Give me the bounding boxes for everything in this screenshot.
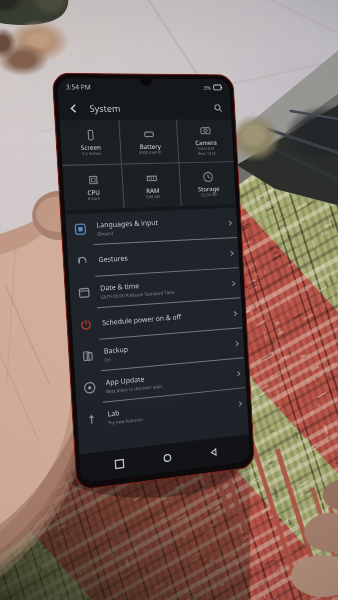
button[interactable]: Search [211, 101, 224, 114]
staticText: Gboard [97, 230, 113, 237]
staticText: Lab [107, 408, 120, 420]
button[interactable]: Date & time [69, 268, 241, 309]
button[interactable]: Recent apps [109, 453, 130, 475]
button[interactable]: Schedule power on & off [71, 298, 243, 341]
staticText: 3.00 GB [145, 194, 160, 199]
button[interactable]: Battery [119, 120, 178, 164]
staticText: App Update [105, 374, 146, 388]
staticText: 32.00 GB [201, 192, 217, 197]
staticText: Try new features [108, 416, 144, 426]
button[interactable] [66, 101, 81, 115]
button[interactable]: App Update [75, 358, 246, 404]
staticText: 3% [203, 84, 211, 91]
staticText: Front 5 M Rear 13 M [197, 146, 216, 156]
staticText: Storage [198, 184, 220, 192]
staticText: Date & time [100, 281, 140, 294]
staticText: Battery [139, 142, 161, 150]
staticText: CPU [87, 187, 101, 196]
staticText: Screen [80, 143, 101, 151]
staticText: GMT+05:00 Pakistan Standard Time [100, 289, 174, 300]
button[interactable]: RAM [122, 163, 181, 208]
staticText: 8 Core [88, 196, 101, 201]
staticText: Best place to discover apps [106, 383, 163, 394]
staticText: Gestures [98, 253, 129, 265]
staticText: 3:54 PM [65, 82, 92, 91]
staticText: RAM [146, 186, 160, 194]
button[interactable]: Home [157, 447, 178, 469]
button[interactable]: CPU [62, 165, 124, 210]
staticText: System [89, 102, 121, 114]
button[interactable]: Back [204, 441, 224, 463]
button[interactable]: Storage [179, 162, 236, 206]
staticText: 6.5 inches [82, 151, 101, 156]
staticText: On [104, 356, 112, 363]
button[interactable]: Camera [177, 119, 234, 162]
button[interactable]: Lab [76, 388, 248, 436]
staticText: 5000 mAh/h [139, 150, 162, 155]
staticText: Languages & input [96, 218, 159, 230]
button[interactable]: Languages & input [65, 208, 238, 245]
button[interactable]: Backup [73, 328, 245, 373]
staticText: Camera [195, 138, 217, 146]
button[interactable]: Screen [59, 120, 121, 165]
staticText: Schedule power on & off [102, 312, 182, 328]
staticText: Backup [104, 344, 129, 357]
button[interactable]: Gestures [67, 238, 239, 277]
